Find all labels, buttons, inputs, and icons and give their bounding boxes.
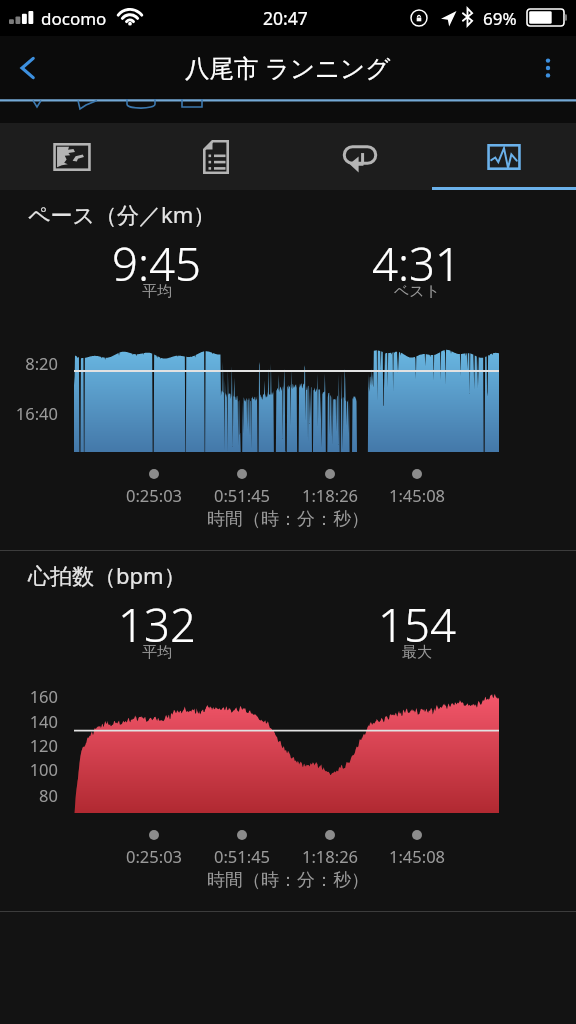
staticText: 8:20 (0, 352, 58, 374)
staticText: 1:18:26 (302, 484, 359, 506)
staticText: ベスト (394, 282, 441, 301)
staticText: 1:45:08 (389, 484, 446, 506)
staticText: 最大 (402, 643, 432, 662)
staticText: ペース（分／km） (28, 199, 216, 229)
staticText: 時間（時：分：秒） (0, 869, 576, 892)
staticText: 9:45 (112, 232, 202, 294)
staticText: 1:45:08 (389, 845, 446, 867)
button[interactable]: Laps (288, 123, 432, 190)
staticText: 時間（時：分：秒） (0, 508, 576, 531)
staticText: 4:31 (372, 232, 462, 294)
staticText: 1:18:26 (302, 845, 359, 867)
button[interactable]: Back (0, 36, 56, 99)
staticText: 平均 (142, 282, 172, 301)
staticText: 心拍数（bpm） (28, 560, 186, 590)
button[interactable]: Map (0, 123, 144, 190)
staticText: 80 (0, 784, 58, 806)
staticText: 140 (0, 710, 58, 732)
staticText: docomo (41, 7, 107, 30)
staticText: 132 (118, 593, 196, 655)
staticText: 八尾市 ランニング (185, 51, 391, 84)
staticText: 0:51:45 (214, 484, 271, 506)
staticText: 154 (378, 593, 456, 655)
button[interactable]: Details (144, 123, 288, 190)
button[interactable]: Charts (432, 123, 576, 190)
staticText: 120 (0, 734, 58, 756)
staticText: 0:51:45 (214, 845, 271, 867)
button[interactable]: More options (520, 36, 576, 99)
staticText: 69% (483, 7, 517, 30)
staticText: 平均 (142, 643, 172, 662)
staticText: 100 (0, 758, 58, 780)
staticText: 160 (0, 685, 58, 707)
staticText: 16:40 (0, 402, 58, 424)
staticText: 0:25:03 (126, 484, 183, 506)
staticText: 0:25:03 (126, 845, 183, 867)
staticText: 20:47 (263, 6, 308, 30)
